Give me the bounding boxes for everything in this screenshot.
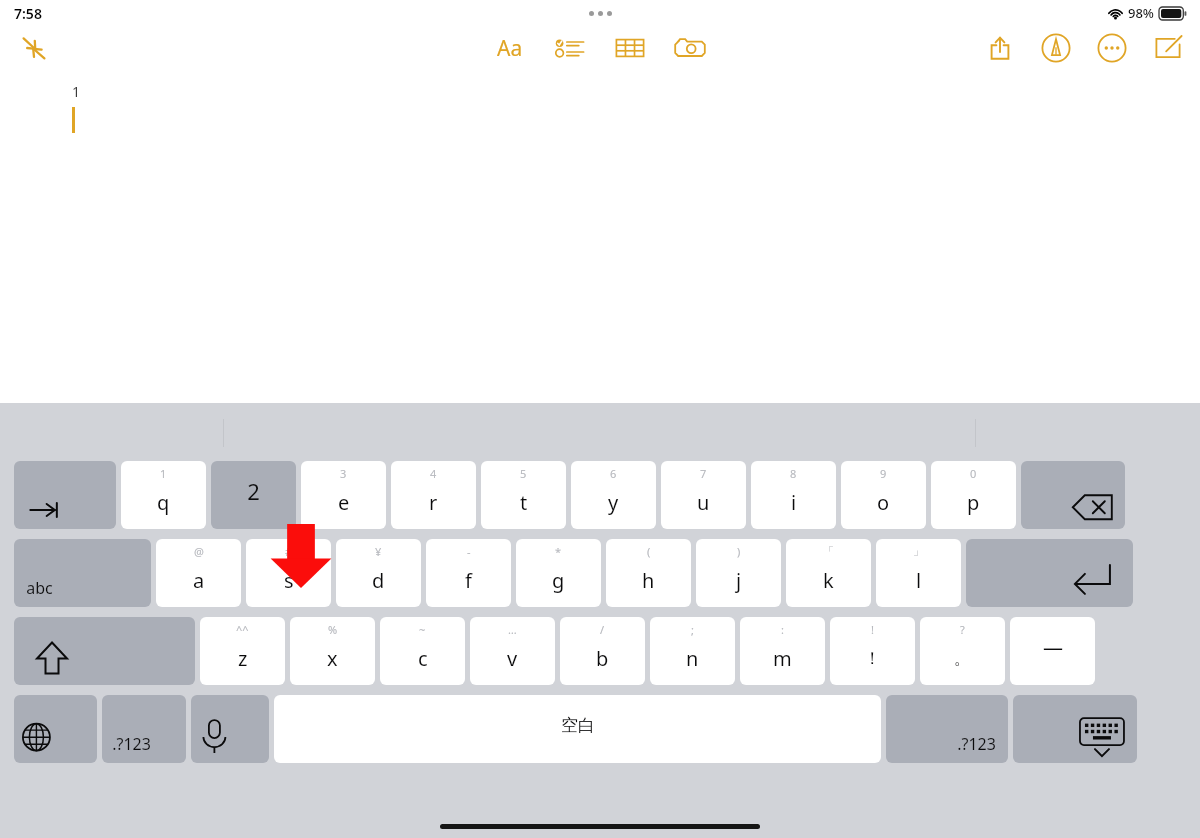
button[interactable]: 「 <box>786 539 871 607</box>
button[interactable]: 5 <box>481 461 566 529</box>
staticText: 。 <box>954 648 971 669</box>
button[interactable]: ) <box>696 539 781 607</box>
button[interactable]: Tab <box>14 461 116 529</box>
staticText: 1 <box>72 82 81 101</box>
button[interactable]: 9 <box>841 461 926 529</box>
staticText: 「 <box>823 544 834 558</box>
staticText: h <box>642 567 655 594</box>
staticText: r <box>429 489 438 516</box>
button[interactable]: # <box>246 539 331 607</box>
button[interactable]: Share <box>980 28 1020 68</box>
staticText: 7 <box>700 466 707 481</box>
staticText: 98% <box>1128 4 1154 22</box>
button[interactable]: ! <box>830 617 915 685</box>
button[interactable]: 8 <box>751 461 836 529</box>
staticText: n <box>686 645 699 672</box>
staticText: y <box>608 489 619 516</box>
button[interactable]: - <box>426 539 511 607</box>
staticText: j <box>736 567 742 594</box>
button[interactable]: 7 <box>661 461 746 529</box>
staticText: g <box>552 567 565 594</box>
button[interactable]: Return <box>966 539 1133 607</box>
staticText: s <box>284 567 294 594</box>
button[interactable]: More options <box>1092 28 1132 68</box>
button[interactable]: 2 <box>211 461 296 529</box>
button[interactable]: .?123 <box>102 695 186 763</box>
button[interactable]: abc <box>14 539 151 607</box>
button[interactable]: Collapse <box>14 28 54 68</box>
staticText: ! <box>871 622 874 637</box>
staticText: a <box>193 567 205 594</box>
button[interactable]: * <box>516 539 601 607</box>
staticText: 空白 <box>561 715 595 736</box>
button[interactable]: Shift <box>14 617 195 685</box>
staticText: % <box>328 622 338 637</box>
staticText: c <box>418 645 428 672</box>
button[interactable]: Space <box>274 695 881 763</box>
button[interactable]: ( <box>606 539 691 607</box>
staticText: … <box>508 622 517 637</box>
staticText: p <box>967 489 980 516</box>
button[interactable]: ? <box>920 617 1005 685</box>
button[interactable]: Hide keyboard <box>1013 695 1137 763</box>
button[interactable]: Multitasking controls <box>587 11 614 16</box>
staticText: .?123 <box>957 733 996 755</box>
button[interactable]: 0 <box>931 461 1016 529</box>
staticText: k <box>823 567 834 594</box>
staticText: 4 <box>430 466 437 481</box>
button[interactable]: ¥ <box>336 539 421 607</box>
staticText: Aa <box>497 34 523 63</box>
button[interactable]: ^^ <box>200 617 285 685</box>
staticText: l <box>916 567 922 594</box>
button[interactable]: 6 <box>571 461 656 529</box>
button[interactable]: 1 <box>121 461 206 529</box>
staticText: : <box>781 622 784 637</box>
button[interactable]: Camera <box>670 28 710 68</box>
button[interactable]: Markup <box>1036 28 1076 68</box>
button[interactable]: 4 <box>391 461 476 529</box>
staticText: ^^ <box>236 622 249 637</box>
staticText: # <box>285 544 293 559</box>
staticText: d <box>372 567 385 594</box>
staticText: i <box>791 489 797 516</box>
button[interactable]: .?123 <box>886 695 1008 763</box>
staticText: 9 <box>880 466 887 481</box>
button[interactable]: % <box>290 617 375 685</box>
button[interactable]: New note <box>1148 28 1188 68</box>
staticText: .?123 <box>112 733 151 755</box>
staticText: z <box>238 645 248 672</box>
staticText: m <box>773 645 792 672</box>
staticText: - <box>467 544 471 559</box>
staticText: ！ <box>864 648 881 669</box>
staticText: 1 <box>160 466 167 481</box>
staticText: * <box>555 544 562 559</box>
staticText: x <box>327 645 338 672</box>
button[interactable]: : <box>740 617 825 685</box>
button[interactable]: Switch keyboard <box>14 695 97 763</box>
staticText: 0 <box>970 466 977 481</box>
button[interactable]: … <box>470 617 555 685</box>
staticText: — <box>1043 634 1063 661</box>
button[interactable]: 3 <box>301 461 386 529</box>
staticText: 2 <box>247 476 260 506</box>
button[interactable]: Checklist <box>550 28 590 68</box>
staticText: t <box>520 489 528 516</box>
staticText: o <box>877 489 890 516</box>
button[interactable]: @ <box>156 539 241 607</box>
staticText: ¥ <box>375 544 382 559</box>
button[interactable]: ; <box>650 617 735 685</box>
button[interactable]: ~ <box>380 617 465 685</box>
staticText: abc <box>26 577 53 599</box>
staticText: u <box>697 489 710 516</box>
button[interactable]: Table <box>610 28 650 68</box>
staticText: @ <box>194 544 204 559</box>
staticText: 6 <box>610 466 617 481</box>
staticText: v <box>507 645 518 672</box>
button[interactable]: 」 <box>876 539 961 607</box>
button[interactable]: / <box>560 617 645 685</box>
button[interactable]: — <box>1010 617 1095 685</box>
button[interactable]: Text format <box>490 28 530 68</box>
button[interactable]: Backspace <box>1021 461 1125 529</box>
button[interactable]: Dictate <box>191 695 269 763</box>
staticText: ( <box>647 544 651 559</box>
